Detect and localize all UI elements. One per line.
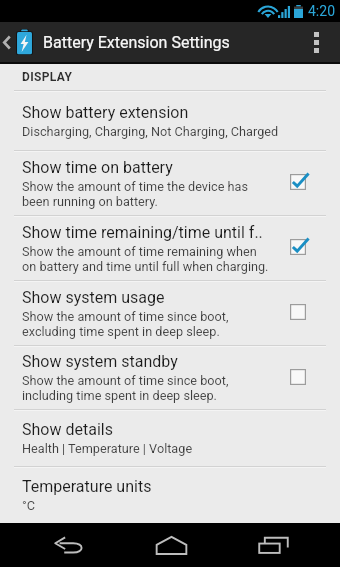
staticText: Show time on battery (22, 158, 173, 177)
button[interactable]: Home (131, 523, 211, 567)
button[interactable]: Navigate up (0, 22, 38, 62)
staticText: Health | Temperature | Voltage (22, 441, 193, 456)
staticText: Battery Extension Settings (43, 33, 230, 52)
staticText: Show the amount of time since boot, incl… (22, 373, 229, 403)
button[interactable]: Show time on battery (0, 151, 340, 216)
button[interactable]: Show system standby (0, 346, 340, 410)
staticText: °C (22, 498, 35, 513)
button[interactable]: Recent apps (233, 523, 313, 567)
button[interactable]: Back (29, 523, 109, 567)
button[interactable]: Show battery extension (0, 91, 340, 151)
button[interactable]: More options (292, 22, 340, 62)
button[interactable]: Show time remaining/time until f.. (0, 216, 340, 281)
staticText: Show the amount of time since boot, excl… (22, 309, 229, 339)
staticText: 4:20 (308, 3, 335, 19)
staticText: Show the amount of time the device has b… (22, 179, 249, 209)
staticText: Discharging, Charging, Not Charging, Cha… (22, 124, 279, 139)
staticText: Show system standby (22, 352, 178, 371)
staticText: Show system usage (22, 288, 165, 307)
button[interactable]: Show system usage (0, 281, 340, 346)
staticText: Show battery extension (22, 103, 189, 122)
button[interactable]: Show details (0, 410, 340, 467)
staticText: Temperature units (22, 477, 152, 496)
staticText: DISPLAY (22, 70, 73, 84)
staticText: Show time remaining/time until f.. (22, 223, 263, 242)
button[interactable]: Temperature units (0, 467, 340, 523)
staticText: Show the amount of time remaining when o… (22, 244, 269, 274)
staticText: Show details (22, 420, 113, 439)
